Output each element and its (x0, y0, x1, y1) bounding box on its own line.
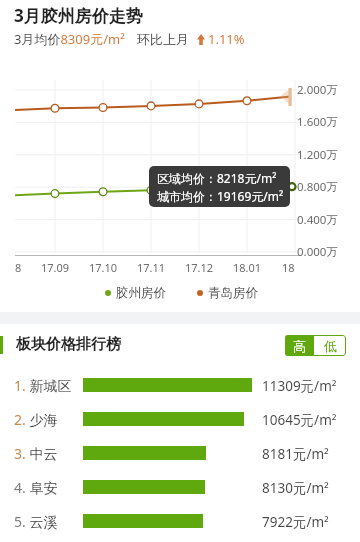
button[interactable]: 2. 少海 (0, 402, 360, 436)
staticText: 5. 云溪 (14, 512, 58, 531)
staticText: 3月均价8309元/m² (14, 30, 125, 48)
staticText: 1.11% (208, 30, 245, 48)
button[interactable]: 5. 云溪 (0, 504, 360, 538)
staticText: 4. 阜安 (14, 478, 58, 497)
staticText: 板块价格排行榜 (16, 335, 121, 354)
staticText: 11309元/m² (262, 377, 337, 395)
staticText: 18.01 (233, 260, 262, 275)
button[interactable]: 高 (285, 335, 314, 356)
staticText: 18 (282, 260, 295, 275)
staticText: 1.200万 (297, 147, 338, 163)
staticText: 1. 新城区 (14, 376, 72, 395)
staticText: 低 (324, 338, 337, 354)
staticText: 胶州房价 (116, 285, 166, 301)
staticText: 0.400万 (297, 212, 338, 228)
staticText: 城市均价：19169元/m² (157, 188, 284, 204)
staticText: 17.11 (137, 260, 166, 275)
button[interactable]: 低 (314, 335, 346, 356)
staticText: 17.12 (185, 260, 214, 275)
staticText: 3月胶州房价走势 (14, 4, 143, 27)
button[interactable]: 1. 新城区 (0, 368, 360, 402)
staticText: 2.000万 (297, 82, 338, 98)
staticText: 7922元/m² (262, 513, 329, 531)
staticText: 高 (293, 338, 306, 354)
staticText: 0.000万 (297, 244, 338, 260)
button[interactable]: 3. 中云 (0, 436, 360, 470)
staticText: 1.600万 (297, 114, 338, 130)
staticText: 17.10 (89, 260, 118, 275)
staticText: 3. 中云 (14, 444, 58, 463)
staticText: 10645元/m² (262, 411, 337, 429)
staticText: 区域均价：8218元/m² (157, 170, 277, 186)
staticText: 环比上月 (137, 31, 189, 47)
staticText: 17.09 (41, 260, 70, 275)
staticText: 2. 少海 (14, 410, 58, 429)
staticText: 8 (15, 260, 22, 275)
staticText: 青岛房价 (208, 285, 258, 301)
staticText: 8181元/m² (262, 445, 329, 463)
button[interactable]: 4. 阜安 (0, 470, 360, 504)
staticText: 8130元/m² (262, 479, 329, 497)
staticText: 0.800万 (297, 179, 338, 195)
